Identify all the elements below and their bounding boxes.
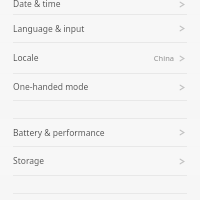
button[interactable]: Storage [0, 147, 200, 175]
staticText: One-handed mode [13, 81, 178, 93]
staticText: Date & time [13, 0, 178, 10]
staticText: Language & input [13, 23, 178, 35]
staticText: Locale [13, 52, 153, 64]
staticText: Battery & performance [13, 127, 178, 139]
button[interactable]: Battery & performance [0, 119, 200, 146]
staticText: Storage [13, 155, 178, 167]
button[interactable]: Locale [0, 43, 200, 73]
staticText: China [153, 53, 174, 63]
button[interactable]: Date & time [0, 0, 200, 14]
button[interactable]: Language & input [0, 15, 200, 42]
button[interactable]: One-handed mode [0, 74, 200, 100]
